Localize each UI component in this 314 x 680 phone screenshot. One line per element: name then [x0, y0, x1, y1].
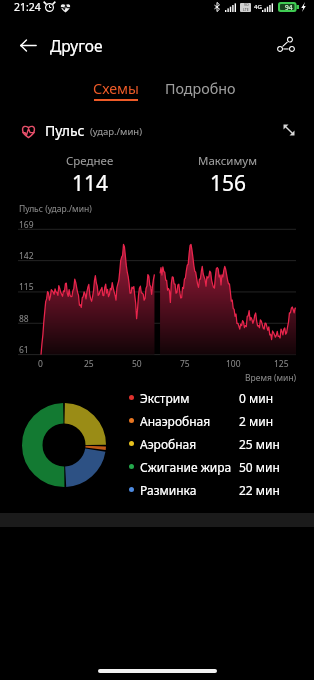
- staticText: Схемы: [93, 79, 139, 98]
- button[interactable]: Сжигание жира: [129, 455, 280, 478]
- staticText: Аэробная: [140, 436, 197, 452]
- staticText: 22 мин: [239, 482, 280, 498]
- staticText: 114: [72, 169, 109, 198]
- staticText: LTE: [243, 7, 249, 12]
- staticText: Анаэробная: [140, 413, 211, 429]
- staticText: Подробно: [165, 79, 236, 98]
- staticText: Время (мин): [245, 372, 297, 384]
- staticText: 21:24: [14, 0, 41, 14]
- button[interactable]: Экстрим: [129, 386, 274, 409]
- staticText: 0 мин: [239, 390, 274, 406]
- staticText: Пульс: [45, 121, 85, 140]
- staticText: 142: [19, 250, 34, 262]
- button[interactable]: Expand chart: [276, 117, 301, 142]
- staticText: 25: [84, 358, 94, 370]
- staticText: Максимум: [198, 153, 258, 169]
- staticText: 75: [180, 358, 190, 370]
- staticText: 50: [132, 358, 142, 370]
- staticText: (удар./мин): [90, 125, 142, 138]
- staticText: 125: [274, 358, 289, 370]
- staticText: 156: [210, 169, 247, 198]
- staticText: 0: [38, 358, 43, 370]
- staticText: Разминка: [140, 482, 197, 498]
- button[interactable]: Аэробная: [129, 432, 280, 455]
- button[interactable]: Share: [266, 25, 306, 65]
- button[interactable]: Схемы: [85, 70, 147, 104]
- staticText: Экстрим: [140, 390, 190, 406]
- staticText: VO: [244, 2, 249, 7]
- staticText: 61: [19, 344, 29, 356]
- button[interactable]: Анаэробная: [129, 409, 274, 432]
- button[interactable]: Back: [8, 25, 48, 65]
- staticText: Другое: [50, 35, 103, 56]
- staticText: 25 мин: [239, 436, 280, 452]
- button[interactable]: Подробно: [158, 70, 242, 104]
- staticText: 94: [285, 3, 293, 12]
- staticText: Сжигание жира: [140, 459, 232, 475]
- button[interactable]: Разминка: [129, 478, 280, 501]
- staticText: 115: [19, 281, 34, 293]
- staticText: 100: [226, 358, 241, 370]
- staticText: 88: [19, 313, 29, 325]
- staticText: Среднее: [66, 153, 114, 169]
- staticText: Пульс (удар./мин): [19, 203, 92, 215]
- staticText: 2 мин: [239, 413, 274, 429]
- staticText: 50 мин: [239, 459, 280, 475]
- staticText: 4G: [254, 3, 262, 11]
- staticText: 169: [19, 219, 34, 231]
